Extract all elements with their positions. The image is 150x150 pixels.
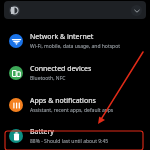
other: Search settings: [9, 5, 20, 16]
button[interactable]: Apps & notifications: [0, 89, 150, 121]
staticText: 88% - Should last until about 9:45: [30, 138, 109, 145]
staticText: Network & internet: [30, 32, 94, 42]
staticText: Apps & notifications: [30, 96, 96, 106]
staticText: Connected devices: [30, 64, 92, 74]
button[interactable]: Network & internet: [0, 25, 150, 57]
staticText: Assistant, recent apps, default apps: [30, 107, 114, 114]
staticText: Wi-Fi, mobile, data usage, and hotspot: [30, 43, 120, 50]
button[interactable]: Search settings: [4, 1, 146, 19]
staticText: Battery: [30, 127, 54, 137]
button[interactable]: Connected devices: [0, 57, 150, 89]
staticText: Bluetooth, NFC: [30, 75, 66, 82]
button[interactable]: Expand: [131, 5, 142, 16]
button[interactable]: Battery: [0, 121, 150, 150]
